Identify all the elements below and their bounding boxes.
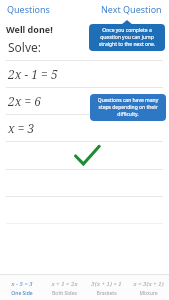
- button[interactable]: x − 5 = 3: [0, 274, 43, 300]
- staticText: 3(x + 1) = 1: [91, 280, 122, 288]
- staticText: x = 3(x + 1): [133, 280, 164, 288]
- staticText: 2x = 6: [8, 93, 41, 109]
- staticText: 2x − 1 = 5: [8, 66, 58, 82]
- staticText: Questions can have many steps depending …: [94, 97, 162, 118]
- staticText: x = 3: [8, 120, 35, 136]
- staticText: x − 5 = 3: [11, 280, 33, 288]
- button[interactable]: Next Question: [94, 1, 169, 17]
- staticText: Well done!: [6, 23, 53, 35]
- staticText: One Side: [11, 290, 33, 297]
- button[interactable]: Questions: [0, 1, 57, 17]
- staticText: Questions: [7, 3, 50, 15]
- staticText: Both Sides: [52, 290, 77, 297]
- staticText: Mixture: [139, 290, 158, 297]
- staticText: Solve:: [8, 39, 42, 55]
- button[interactable]: 3(x + 1) = 1: [85, 274, 127, 300]
- button[interactable]: x + 1 = 2x: [43, 274, 85, 300]
- button[interactable]: x = 3(x + 1): [127, 274, 169, 300]
- button[interactable]: 2x = 6: [0, 88, 169, 114]
- staticText: Brackets: [96, 290, 117, 297]
- staticText: x + 1 = 2x: [51, 280, 78, 288]
- staticText: Next Question: [101, 3, 162, 15]
- button[interactable]: x = 3: [0, 115, 169, 141]
- button[interactable]: 2x − 1 = 5: [0, 61, 169, 87]
- staticText: Once you complete a question you can jum…: [93, 27, 161, 48]
